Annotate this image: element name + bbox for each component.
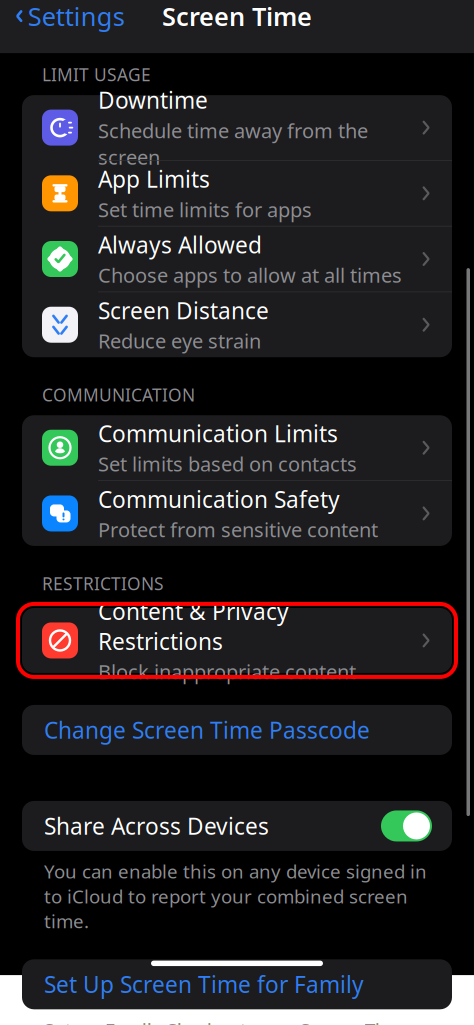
- staticText: App Limits: [98, 164, 210, 194]
- staticText: RESTRICTIONS: [42, 572, 164, 595]
- button[interactable]: App Limits: [22, 161, 452, 226]
- staticText: Settings: [28, 0, 125, 33]
- staticText: Set time limits for apps: [98, 196, 312, 223]
- staticText: Set up Family Sharing to use Screen Time…: [44, 1017, 408, 1025]
- staticText: Schedule time away from the screen: [98, 117, 368, 170]
- button[interactable]: Share Across Devices: [22, 801, 452, 851]
- staticText: Set Up Screen Time for Family: [44, 969, 364, 999]
- staticText: Protect from sensitive content: [98, 516, 378, 543]
- button[interactable]: Communication Safety: [22, 481, 452, 546]
- staticText: Screen Distance: [98, 295, 269, 325]
- staticText: Change Screen Time Passcode: [44, 715, 370, 745]
- button[interactable]: Content & Privacy Restrictions: [22, 608, 452, 673]
- button[interactable]: Settings: [0, 0, 125, 41]
- button[interactable]: Screen Distance: [22, 292, 452, 357]
- staticText: Content & Privacy Restrictions: [98, 596, 289, 656]
- button[interactable]: Change Screen Time Passcode: [22, 705, 452, 755]
- staticText: Block inappropriate content: [98, 658, 356, 685]
- staticText: COMMUNICATION: [42, 383, 195, 406]
- staticText: You can enable this on any device signed…: [44, 859, 427, 933]
- staticText: Communication Limits: [98, 418, 338, 448]
- staticText: Share Across Devices: [44, 811, 269, 841]
- button[interactable]: Downtime: [22, 95, 452, 161]
- staticText: Always Allowed: [98, 230, 262, 260]
- button[interactable]: Communication Limits: [22, 415, 452, 481]
- staticText: Screen Time: [162, 0, 312, 33]
- staticText: LIMIT USAGE: [42, 63, 151, 86]
- staticText: Communication Safety: [98, 484, 340, 514]
- staticText: Set limits based on contacts: [98, 450, 357, 477]
- staticText: Choose apps to allow at all times: [98, 262, 402, 288]
- staticText: Reduce eye strain: [98, 327, 261, 354]
- staticText: Downtime: [98, 85, 208, 115]
- button[interactable]: Set Up Screen Time for Family: [22, 959, 452, 1009]
- button[interactable]: Always Allowed: [22, 226, 452, 292]
